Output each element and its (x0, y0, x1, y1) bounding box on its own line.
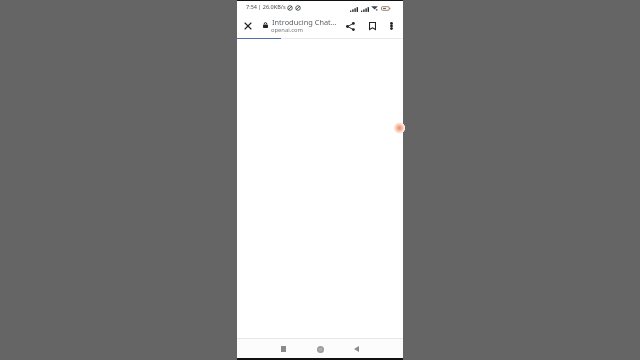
staticText: Introducing Chat… (272, 17, 336, 27)
button[interactable]: Recents (275, 341, 291, 357)
button[interactable]: Home (312, 341, 328, 357)
staticText: openai.com (271, 26, 303, 34)
button[interactable]: Close (240, 18, 256, 34)
button[interactable]: Bookmark (364, 18, 380, 34)
button[interactable]: Back (348, 341, 364, 357)
button[interactable]: More options (383, 18, 399, 34)
staticText: 7:54 | 26.0KB/s (246, 3, 286, 10)
button[interactable]: Share (342, 18, 358, 34)
